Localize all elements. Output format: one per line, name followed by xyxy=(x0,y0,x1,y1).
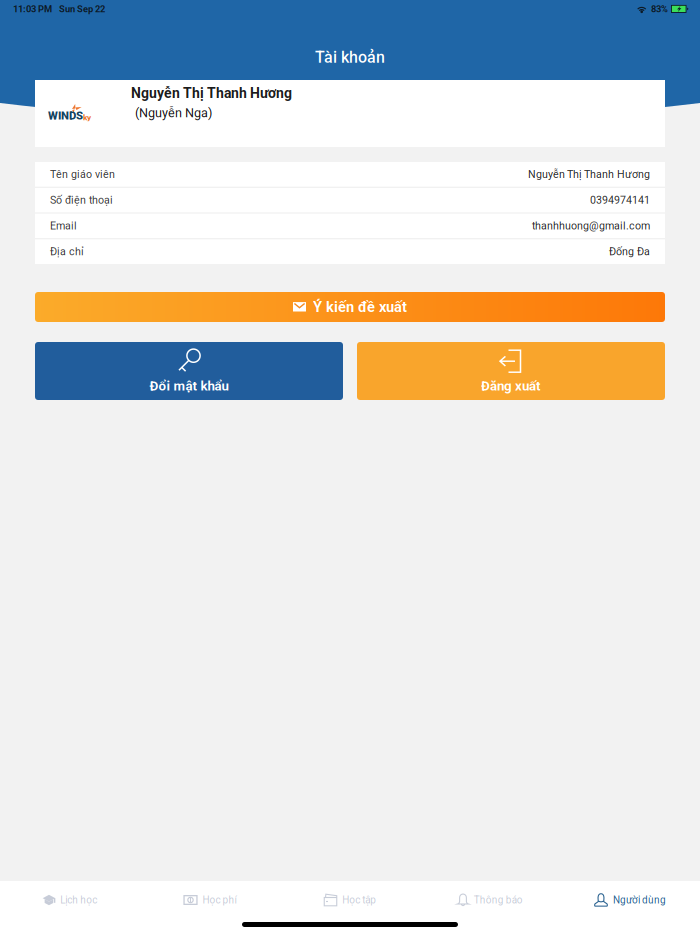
button[interactable]: Ý kiến đề xuất xyxy=(35,292,665,322)
staticText: Đổi mật khẩu xyxy=(149,378,228,394)
staticText: Người dùng xyxy=(613,894,666,906)
staticText: Tài khoản xyxy=(315,48,385,67)
staticText: Số điện thoại xyxy=(50,194,113,206)
staticText: ky xyxy=(83,113,91,122)
staticText: Sun Sep 22 xyxy=(59,3,105,14)
staticText: Lịch học xyxy=(60,894,97,906)
button[interactable]: Người dùng xyxy=(560,881,700,919)
button[interactable]: Đăng xuất xyxy=(357,342,665,400)
staticText: 0394974141 xyxy=(590,194,650,206)
button[interactable]: Học phí xyxy=(140,881,280,919)
staticText: Tên giáo viên xyxy=(50,168,115,181)
staticText: Đống Đa xyxy=(609,245,650,258)
staticText: thanhhuong@gmail.com xyxy=(532,220,650,232)
staticText: Ý kiến đề xuất xyxy=(313,298,407,316)
staticText: Địa chỉ xyxy=(50,245,84,258)
button[interactable]: Học tập xyxy=(280,881,420,919)
staticText: Đăng xuất xyxy=(481,378,541,394)
staticText: 11:03 PM xyxy=(13,3,52,14)
staticText: Email xyxy=(50,220,77,232)
staticText: Học tập xyxy=(342,894,376,906)
staticText: (Nguyễn Nga) xyxy=(135,105,212,120)
staticText: Học phí xyxy=(203,894,237,906)
staticText: Thông báo xyxy=(474,894,523,906)
button[interactable]: Đổi mật khẩu xyxy=(35,342,343,400)
staticText: WINDS xyxy=(48,109,83,122)
button[interactable]: Lịch học xyxy=(0,881,140,919)
staticText: Nguyễn Thị Thanh Hương xyxy=(528,168,650,181)
button[interactable]: Thông báo xyxy=(420,881,560,919)
staticText: Nguyễn Thị Thanh Hương xyxy=(131,85,292,101)
staticText: 83% xyxy=(651,3,668,14)
